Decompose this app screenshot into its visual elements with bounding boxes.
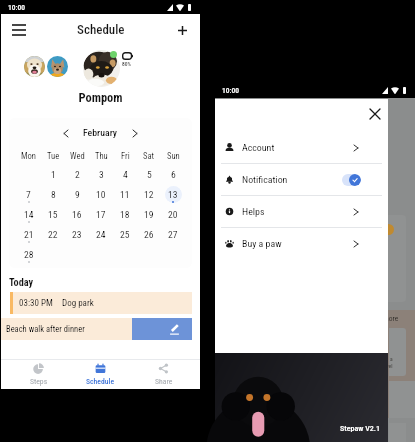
button[interactable]: 22 bbox=[41, 224, 65, 244]
staticText: Dog park bbox=[62, 298, 94, 309]
staticText: 18 bbox=[120, 209, 130, 220]
button[interactable]: 18 bbox=[113, 204, 137, 224]
staticText: Sat bbox=[143, 151, 155, 161]
button[interactable]: 4 bbox=[113, 164, 137, 184]
button[interactable]: Steps bbox=[13, 359, 64, 389]
button[interactable]: Beach walk after dinner bbox=[1, 318, 132, 340]
staticText: 2 bbox=[75, 169, 80, 180]
staticText: Mon bbox=[21, 151, 36, 161]
staticText: Schedule bbox=[77, 22, 125, 37]
staticText: Fri bbox=[121, 151, 130, 161]
button[interactable]: Previous month bbox=[58, 125, 74, 141]
button[interactable]: 5 bbox=[137, 164, 161, 184]
button[interactable]: 13 bbox=[161, 184, 185, 204]
button[interactable]: 20 bbox=[161, 204, 185, 224]
button[interactable]: 11 bbox=[113, 184, 137, 204]
staticText: 14 bbox=[24, 209, 34, 220]
button[interactable]: Notification toggle bbox=[342, 174, 361, 186]
button[interactable]: 7 bbox=[16, 184, 41, 204]
staticText: 5 bbox=[147, 169, 152, 180]
button[interactable]: Notification bbox=[215, 164, 388, 195]
button[interactable]: 27 bbox=[161, 224, 185, 244]
button[interactable]: Share bbox=[138, 359, 189, 389]
staticText: Beach walk after dinner bbox=[6, 324, 85, 334]
staticText: 6 bbox=[171, 169, 176, 180]
staticText: 15 bbox=[48, 209, 58, 220]
staticText: 23 bbox=[72, 229, 82, 240]
button[interactable]: 25 bbox=[113, 224, 137, 244]
staticText: 1 bbox=[51, 169, 56, 180]
button[interactable]: Menu bbox=[7, 18, 31, 42]
staticText: 10 bbox=[96, 189, 106, 200]
staticText: 9 bbox=[75, 189, 80, 200]
button[interactable]: Edit bbox=[132, 318, 192, 340]
button[interactable]: 1 bbox=[41, 164, 65, 184]
staticText: 19 bbox=[144, 209, 154, 220]
button[interactable]: 24 bbox=[89, 224, 113, 244]
staticText: 27 bbox=[168, 229, 178, 240]
staticText: Thu bbox=[95, 151, 108, 161]
button[interactable]: 26 bbox=[137, 224, 161, 244]
button[interactable]: 14 bbox=[16, 204, 41, 224]
button[interactable]: Close bbox=[366, 105, 384, 123]
staticText: Tue bbox=[47, 151, 60, 161]
staticText: 22 bbox=[48, 229, 58, 240]
staticText: a bbox=[390, 356, 393, 362]
button[interactable]: Schedule bbox=[75, 359, 126, 389]
staticText: 28 bbox=[24, 249, 34, 260]
staticText: 10:00 bbox=[8, 3, 25, 12]
staticText: 11 bbox=[120, 189, 130, 200]
staticText: 10:00 bbox=[222, 86, 239, 95]
button[interactable]: 16 bbox=[65, 204, 89, 224]
button[interactable]: 2 bbox=[65, 164, 89, 184]
staticText: Today bbox=[9, 276, 34, 288]
staticText: Stepaw V2.1 bbox=[340, 424, 380, 433]
staticText: 12 bbox=[144, 189, 154, 200]
staticText: 24 bbox=[96, 229, 106, 240]
staticText: 20 bbox=[168, 209, 178, 220]
staticText: 3 bbox=[99, 169, 104, 180]
staticText: Share bbox=[155, 377, 173, 386]
button[interactable]: 19 bbox=[137, 204, 161, 224]
button[interactable]: Helps bbox=[215, 196, 388, 227]
staticText: rel bbox=[387, 363, 393, 369]
staticText: Schedule bbox=[86, 377, 115, 386]
staticText: Notification bbox=[242, 174, 288, 186]
staticText: 17 bbox=[96, 209, 106, 220]
staticText: Steps bbox=[30, 377, 48, 386]
button[interactable]: 10 bbox=[89, 184, 113, 204]
button[interactable]: 9 bbox=[65, 184, 89, 204]
staticText: 8 bbox=[51, 189, 56, 200]
button[interactable]: Pet Mochi bbox=[47, 56, 68, 77]
staticText: Sun bbox=[167, 151, 180, 161]
button[interactable]: Next month bbox=[127, 125, 143, 141]
button[interactable]: Pet Buddy bbox=[24, 56, 45, 77]
button[interactable]: 3 bbox=[89, 164, 113, 184]
staticText: Helps bbox=[242, 206, 265, 218]
staticText: more bbox=[383, 314, 399, 323]
staticText: Buy a paw bbox=[242, 238, 282, 250]
button[interactable]: 17 bbox=[89, 204, 113, 224]
button[interactable]: 15 bbox=[41, 204, 65, 224]
staticText: 16 bbox=[72, 209, 82, 220]
staticText: 7 bbox=[26, 189, 31, 200]
button[interactable]: Pet Pompom bbox=[83, 50, 120, 87]
button[interactable]: 8 bbox=[41, 184, 65, 204]
staticText: 80% bbox=[122, 61, 131, 67]
staticText: 03:30 PM bbox=[19, 298, 53, 309]
button[interactable]: 28 bbox=[16, 244, 41, 264]
button[interactable]: Account bbox=[215, 132, 388, 163]
button[interactable]: 21 bbox=[16, 224, 41, 244]
staticText: Wed bbox=[70, 151, 85, 161]
button[interactable]: 23 bbox=[65, 224, 89, 244]
staticText: 4 bbox=[123, 169, 128, 180]
staticText: Account bbox=[242, 142, 275, 154]
button[interactable]: 03:30 PM bbox=[10, 292, 192, 314]
button[interactable]: Buy a paw bbox=[215, 228, 388, 259]
button[interactable]: 12 bbox=[137, 184, 161, 204]
button[interactable]: Add bbox=[170, 18, 194, 42]
staticText: 21 bbox=[24, 229, 34, 240]
staticText: 13 bbox=[168, 189, 178, 200]
button[interactable]: 6 bbox=[161, 164, 185, 184]
staticText: Pompom bbox=[1, 90, 200, 105]
